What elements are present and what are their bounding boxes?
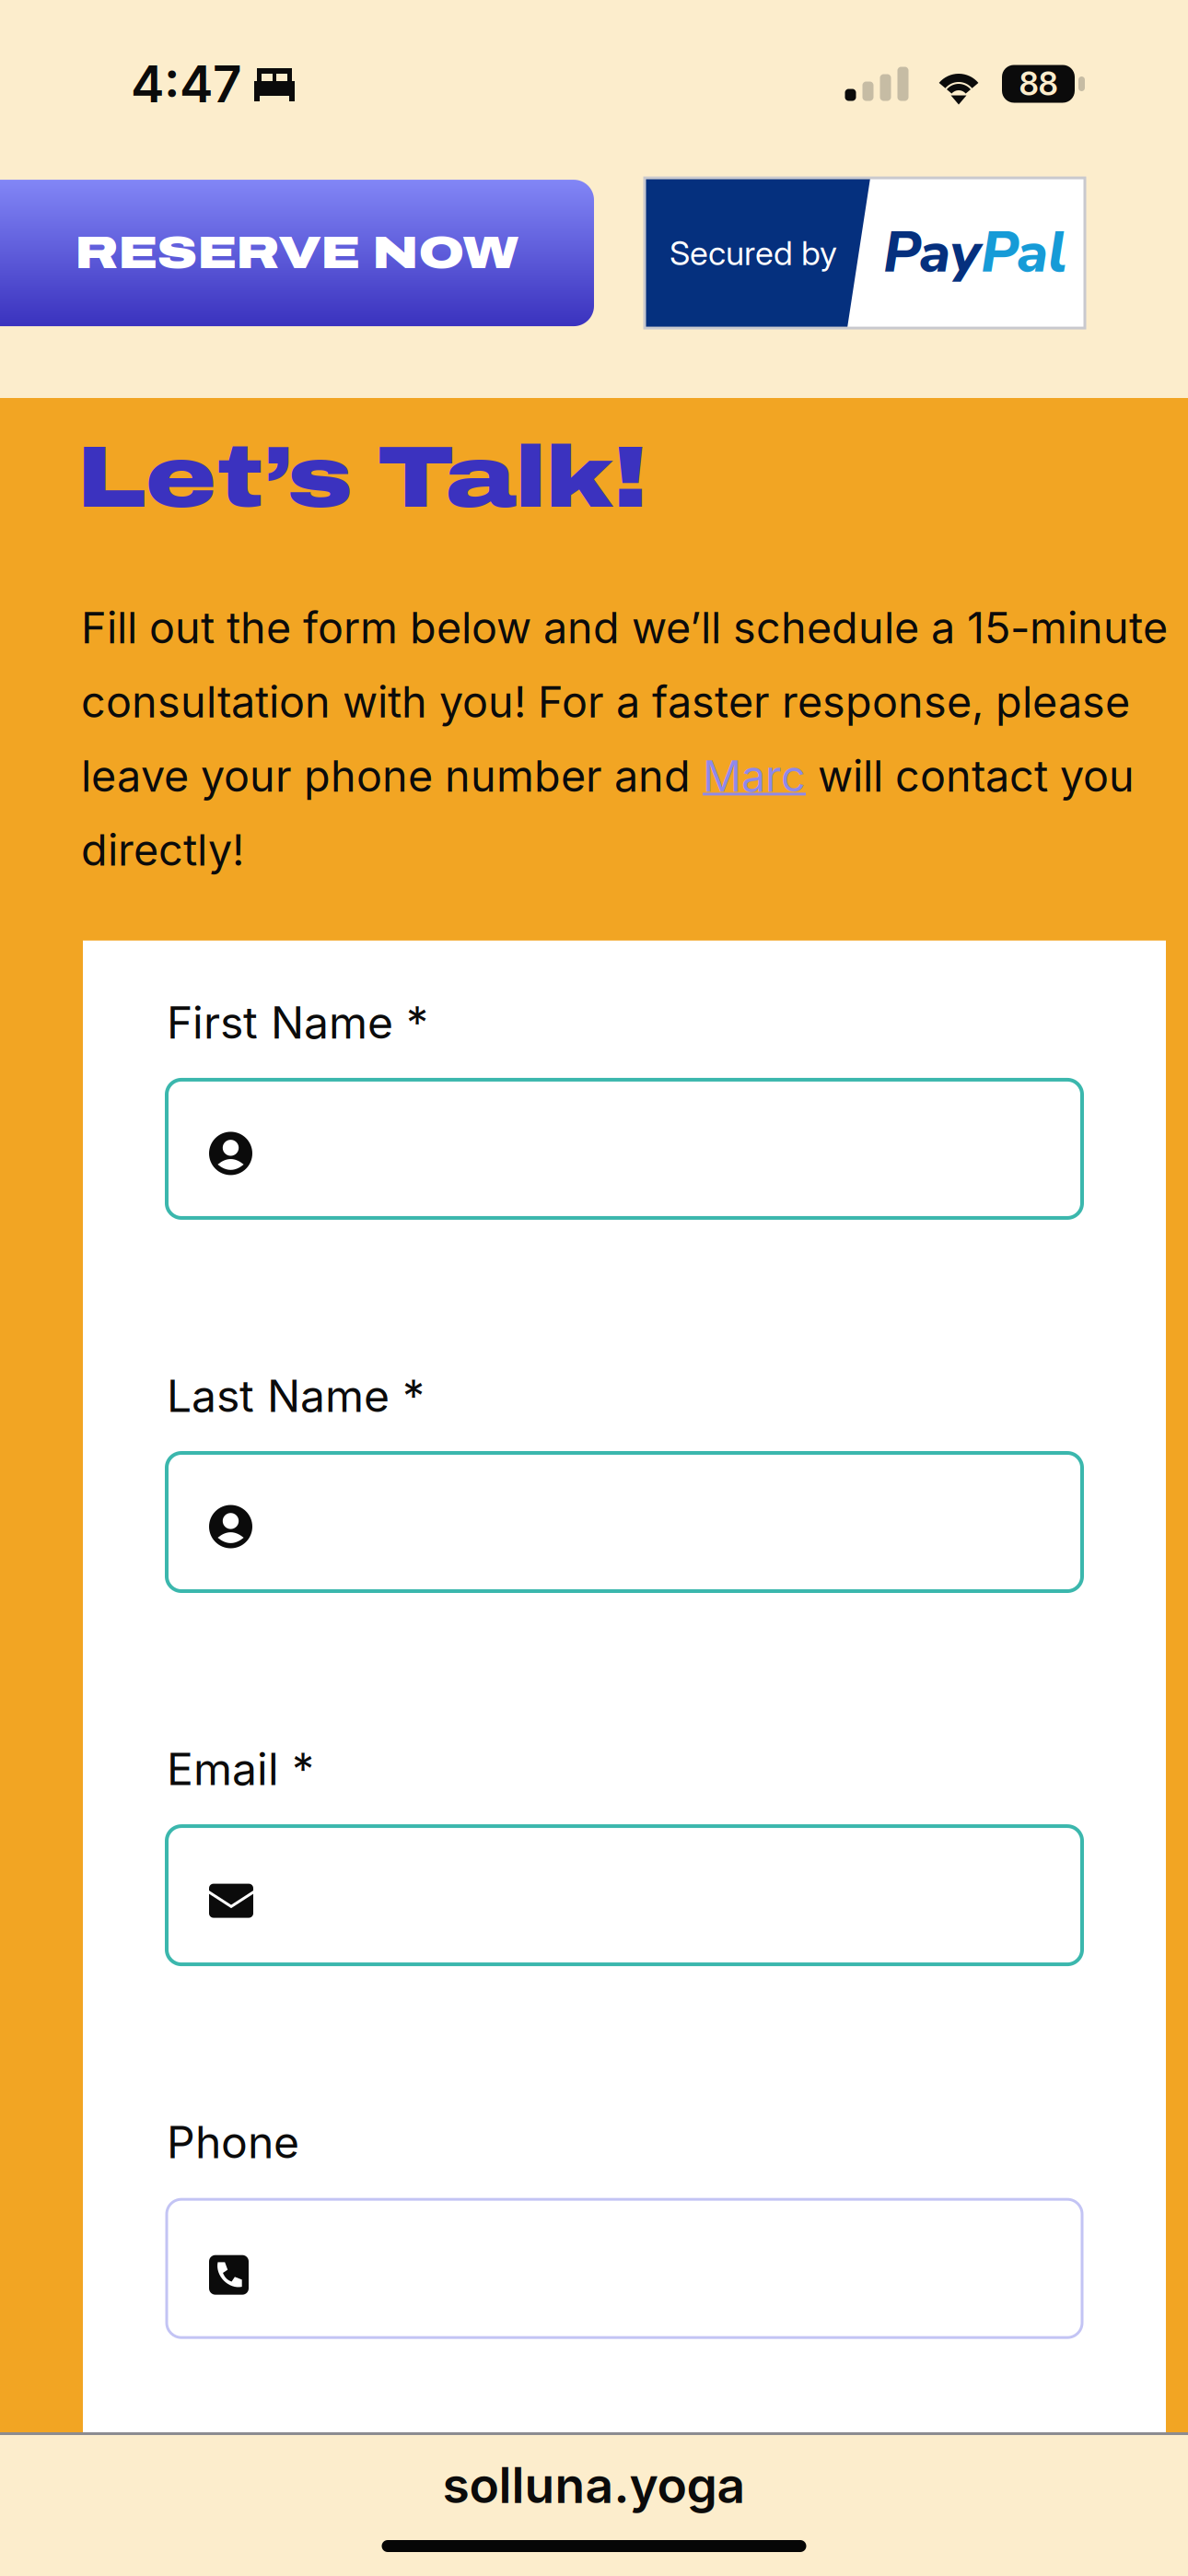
staticText: Marc: [703, 750, 806, 802]
staticText: will contact you: [806, 750, 1135, 802]
staticText: Fill out the form below and we’ll schedu…: [81, 602, 1168, 654]
staticText: directly!: [81, 824, 244, 876]
staticText: leave your phone number and: [81, 750, 703, 802]
staticText: Secured by: [670, 233, 837, 273]
staticText: Email *: [167, 1742, 314, 1796]
staticText: Last Name *: [167, 1369, 425, 1423]
staticText: 88: [1019, 64, 1058, 103]
staticText: First Name *: [167, 996, 428, 1049]
staticText: consultation with you! For a faster resp…: [81, 676, 1130, 728]
staticText: Let’s Talk!: [77, 430, 647, 525]
staticText: Phone: [167, 2115, 299, 2169]
staticText: Pal: [981, 214, 1066, 292]
staticText: 4:47: [131, 53, 241, 114]
button[interactable]: RESERVE NOW: [0, 180, 594, 326]
staticText: solluna.yoga: [443, 2455, 745, 2515]
button[interactable]: Marc: [703, 750, 806, 802]
staticText: RESERVE NOW: [75, 228, 519, 278]
staticText: Pay: [883, 214, 981, 292]
